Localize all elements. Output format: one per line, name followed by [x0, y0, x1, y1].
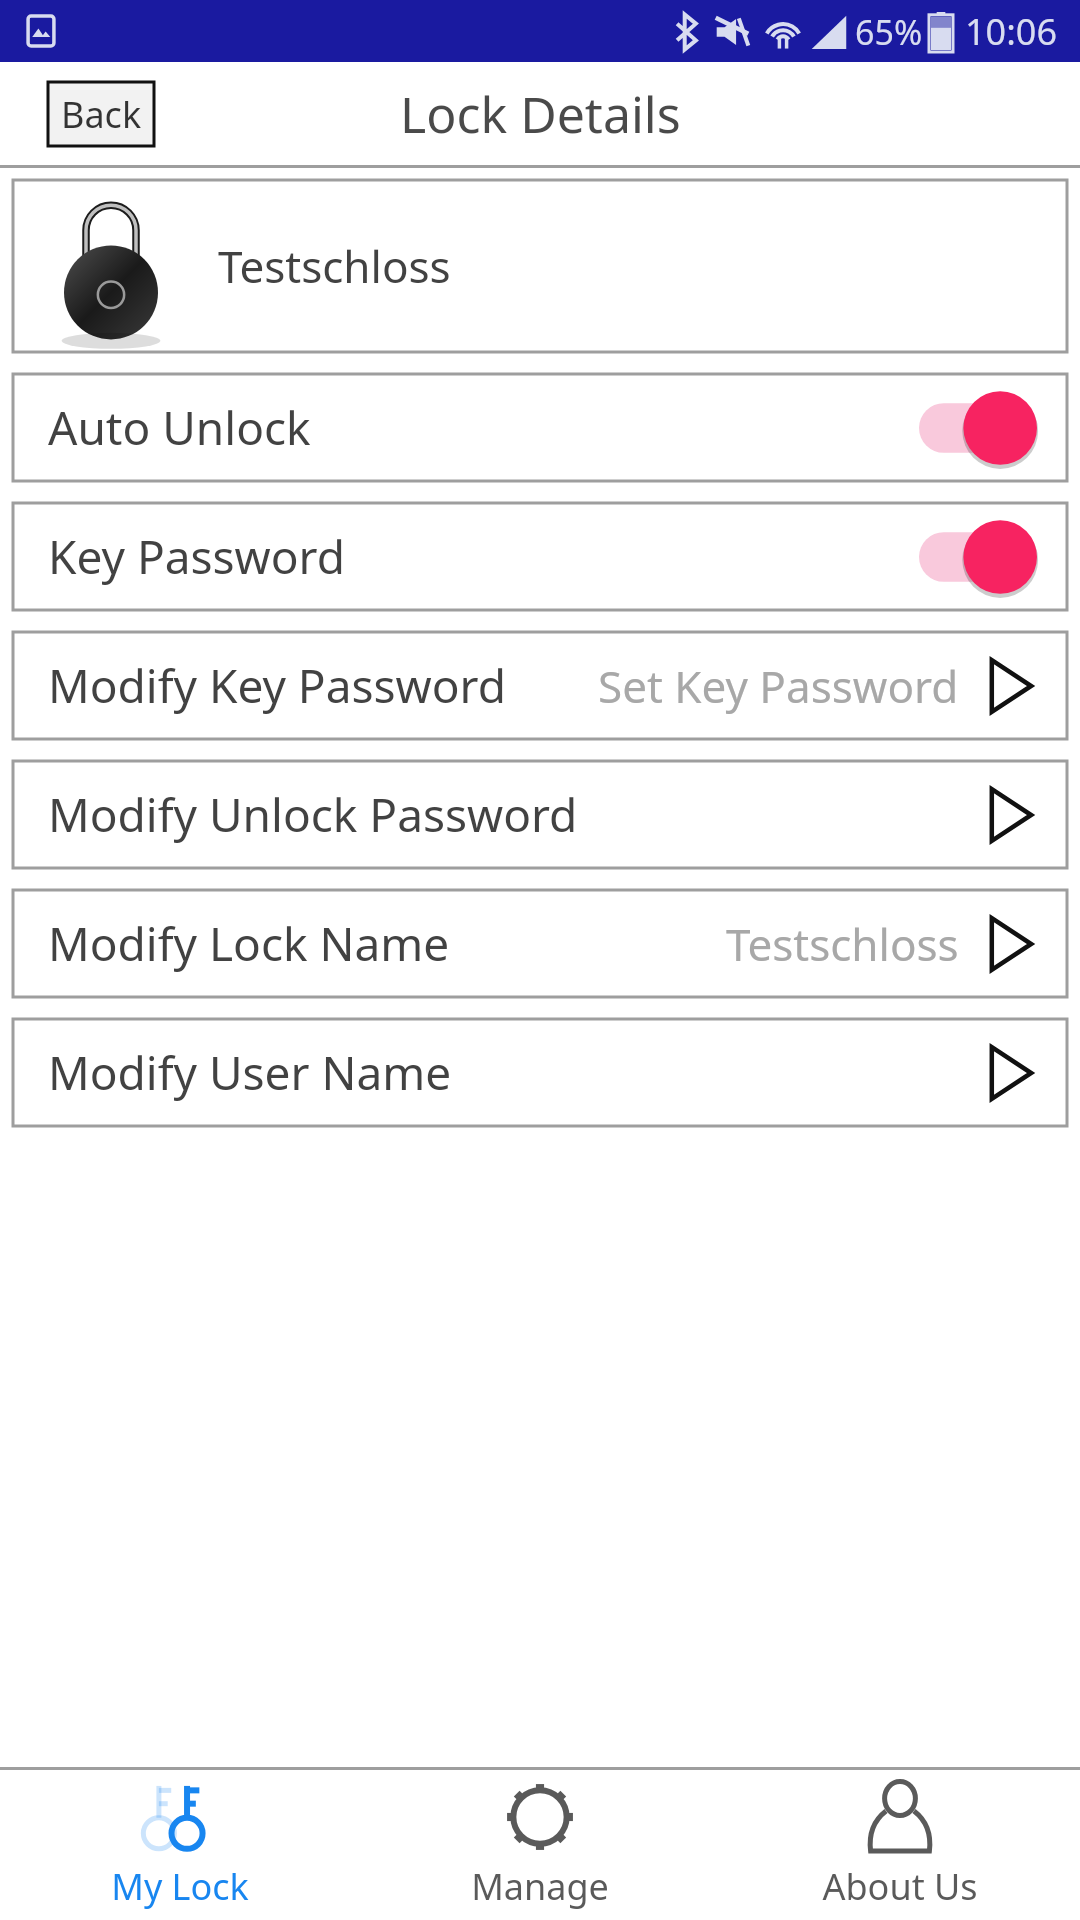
- button[interactable]: Manage: [360, 1770, 720, 1920]
- button[interactable]: Modify Unlock Password: [13, 761, 1067, 868]
- button[interactable]: Key Password: [13, 503, 1067, 610]
- button[interactable]: About Us: [720, 1770, 1080, 1920]
- button[interactable]: Auto Unlock: [13, 374, 1067, 481]
- staticText: Testschloss: [218, 236, 451, 296]
- button[interactable]: My Lock: [0, 1770, 360, 1920]
- other: Manage: [503, 1780, 577, 1854]
- staticText: Modify Key Password: [48, 654, 506, 717]
- button[interactable]: Modify Lock Name: [13, 890, 1067, 997]
- staticText: Modify Unlock Password: [48, 783, 578, 846]
- staticText: My Lock: [111, 1862, 249, 1911]
- staticText: Auto Unlock: [48, 396, 311, 459]
- button[interactable]: Auto Unlock toggle: [919, 388, 1037, 468]
- staticText: Manage: [471, 1862, 609, 1911]
- button[interactable]: Key Password toggle: [919, 517, 1037, 597]
- staticText: Lock Details: [400, 80, 681, 148]
- staticText: 10:06: [965, 7, 1058, 56]
- staticText: 65%: [855, 9, 923, 55]
- staticText: Set Key Password: [598, 656, 959, 716]
- button[interactable]: Modify User Name: [13, 1019, 1067, 1126]
- staticText: Testschloss: [726, 914, 959, 974]
- other: About Us: [865, 1780, 935, 1854]
- button[interactable]: Testschloss: [13, 180, 1067, 352]
- staticText: Modify Lock Name: [48, 912, 450, 975]
- staticText: About Us: [822, 1862, 978, 1911]
- staticText: Back: [61, 90, 142, 139]
- button[interactable]: Back: [48, 82, 154, 146]
- other: My Lock: [136, 1780, 224, 1854]
- button[interactable]: Modify Key Password: [13, 632, 1067, 739]
- staticText: Key Password: [48, 525, 345, 588]
- staticText: Modify User Name: [48, 1041, 452, 1104]
